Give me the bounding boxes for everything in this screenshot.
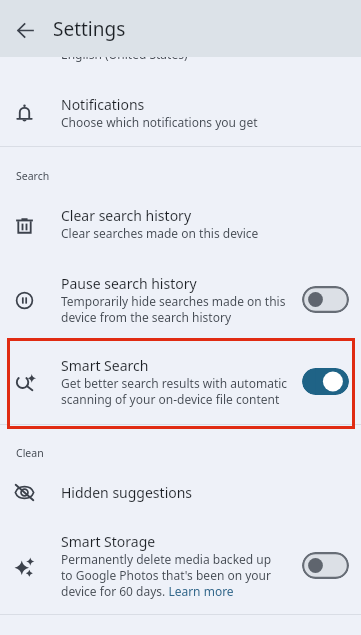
button[interactable]: Pause search history	[0, 258, 361, 338]
staticText: Clear searches made on this device	[61, 225, 259, 241]
button[interactable]: Smart Storage	[0, 516, 361, 614]
button[interactable]: Smart Search on	[302, 368, 349, 395]
button[interactable]: Back	[5, 10, 45, 50]
staticText: Clear search history	[61, 207, 192, 225]
button[interactable]: Pause search history off	[302, 286, 349, 313]
staticText: Hidden suggestions	[61, 484, 193, 502]
staticText: Pause search history	[61, 275, 197, 293]
button[interactable]: Hidden suggestions	[0, 468, 361, 516]
staticText: Clean	[16, 446, 44, 460]
button[interactable]: Smart Search	[0, 340, 361, 424]
staticText: Search	[16, 169, 50, 183]
staticText: English (United States)	[61, 46, 188, 62]
staticText: Temporarily hide searches made on this d…	[61, 293, 286, 325]
staticText: Choose which notifications you get	[61, 114, 258, 130]
staticText: Get better search results with automatic…	[61, 375, 288, 407]
button[interactable]: Smart Storage off	[302, 552, 349, 579]
staticText: Notifications	[61, 96, 145, 114]
staticText: Smart Storage	[61, 533, 156, 551]
button[interactable]: Notifications	[0, 79, 361, 146]
staticText: Settings	[53, 16, 126, 42]
staticText: Permanently delete media backed up to Go…	[61, 551, 272, 599]
button[interactable]: Clear search history	[0, 190, 361, 258]
staticText: Smart Search	[61, 357, 149, 375]
